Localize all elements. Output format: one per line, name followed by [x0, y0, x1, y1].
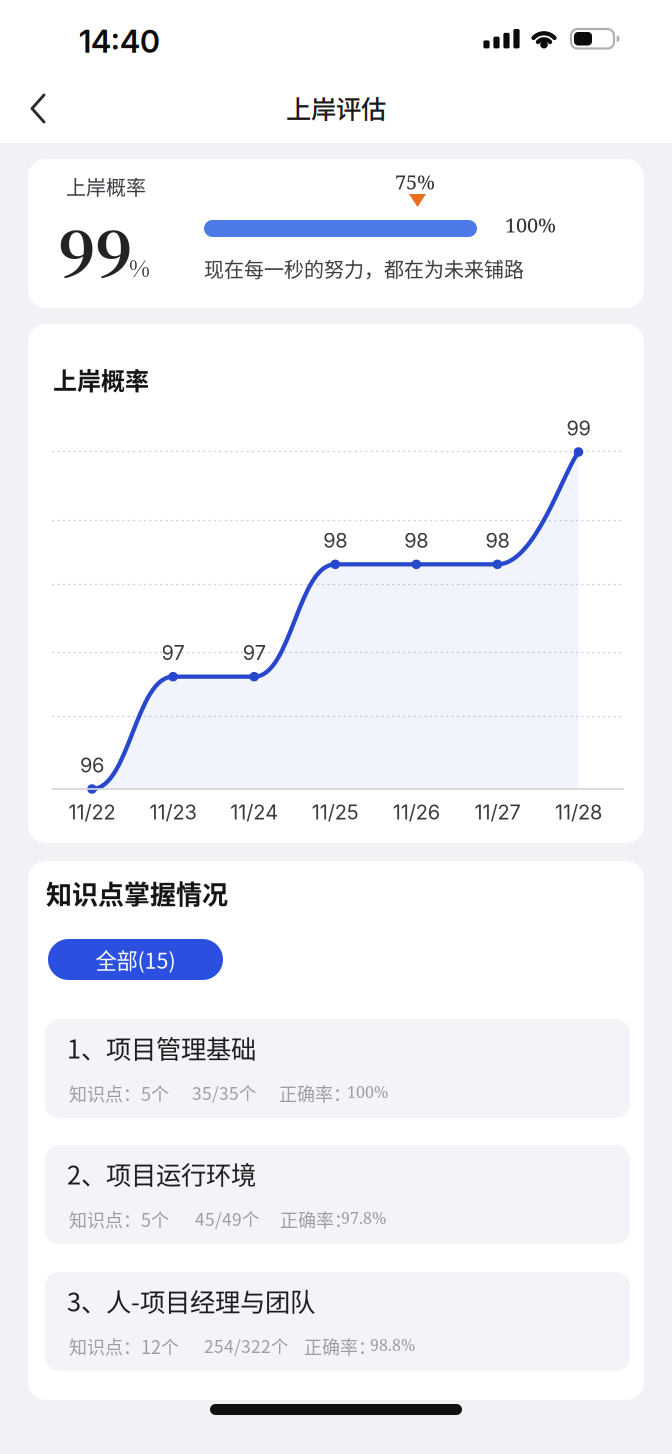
staticText: 11/22: [68, 800, 115, 824]
staticText: 知识点：: [69, 1333, 141, 1359]
staticText: 上岸概率: [53, 362, 149, 397]
staticText: 2、项目运行环境: [67, 1155, 256, 1192]
staticText: 正确率：: [280, 1206, 352, 1232]
button[interactable]: 3、人-项目经理与团队: [45, 1272, 630, 1371]
staticText: 知识点：: [69, 1206, 141, 1232]
staticText: 1、项目管理基础: [67, 1029, 256, 1066]
staticText: 12个: [141, 1333, 179, 1359]
staticText: 98: [404, 528, 428, 552]
staticText: 5个: [141, 1206, 169, 1232]
staticText: 254/322个: [204, 1333, 288, 1358]
staticText: 98: [323, 528, 347, 552]
staticText: 96: [80, 753, 104, 777]
staticText: 98.8%: [370, 1334, 415, 1356]
staticText: 现在每一秒的努力，都在为未来铺路: [204, 254, 524, 283]
staticText: 14:40: [79, 23, 160, 60]
staticText: 97: [243, 641, 266, 665]
staticText: 75%: [395, 168, 435, 195]
staticText: 100%: [347, 1081, 388, 1103]
staticText: 正确率：: [279, 1080, 351, 1106]
staticText: 99: [566, 416, 590, 440]
staticText: 11/24: [230, 800, 278, 824]
staticText: 知识点：: [69, 1080, 141, 1106]
button[interactable]: 全部(15): [48, 939, 223, 980]
staticText: 11/23: [150, 800, 197, 824]
staticText: 3、人-项目经理与团队: [67, 1282, 315, 1319]
staticText: 上岸概率: [66, 172, 146, 201]
button[interactable]: 1、项目管理基础: [45, 1019, 630, 1118]
staticText: 11/25: [312, 800, 359, 824]
staticText: 100%: [505, 211, 556, 238]
staticText: %: [129, 251, 150, 284]
staticText: 45/49个: [195, 1206, 259, 1231]
staticText: 97.8%: [341, 1207, 386, 1229]
button[interactable]: Back: [10, 76, 72, 141]
staticText: 上岸评估: [286, 89, 386, 126]
staticText: 正确率：: [304, 1333, 376, 1359]
staticText: 99: [58, 205, 132, 295]
button[interactable]: 2、项目运行环境: [45, 1145, 630, 1244]
staticText: 11/27: [474, 800, 520, 824]
staticText: 11/28: [555, 800, 602, 824]
staticText: 11/26: [393, 800, 440, 824]
staticText: 知识点掌握情况: [46, 874, 228, 912]
staticText: 97: [162, 641, 185, 665]
staticText: 5个: [141, 1080, 169, 1106]
staticText: 全部(15): [95, 944, 175, 975]
staticText: 35/35个: [192, 1080, 256, 1105]
staticText: 98: [485, 528, 509, 552]
